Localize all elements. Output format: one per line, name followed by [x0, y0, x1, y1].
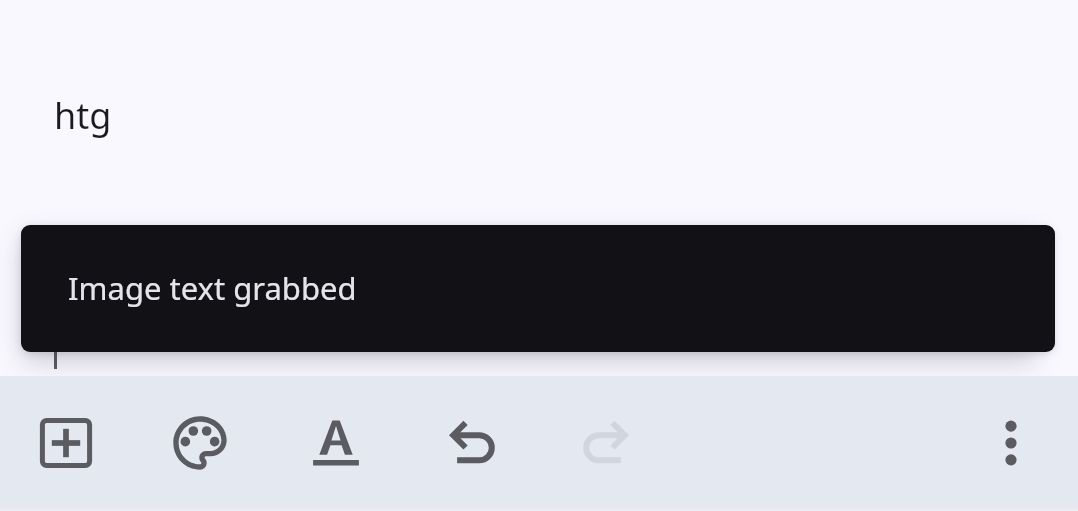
- staticText: Image text grabbed: [68, 267, 357, 309]
- button[interactable]: Undo: [434, 405, 510, 481]
- button[interactable]: Image text grabbed: [21, 225, 1055, 352]
- button[interactable]: More options: [973, 405, 1049, 481]
- button[interactable]: Text formatting options: [298, 405, 374, 481]
- staticText: htg: [54, 91, 112, 140]
- button[interactable]: Color options: [162, 405, 238, 481]
- button[interactable]: Add: [28, 405, 104, 481]
- button[interactable]: Redo: [568, 405, 644, 481]
